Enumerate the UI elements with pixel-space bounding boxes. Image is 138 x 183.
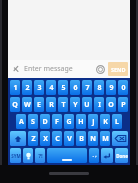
button[interactable]: Shift <box>10 131 26 146</box>
staticText: 8 <box>97 83 102 93</box>
button[interactable]: 3 <box>34 80 44 95</box>
button[interactable]: S <box>28 114 38 129</box>
staticText: 5 <box>61 83 66 93</box>
staticText: C <box>55 134 60 144</box>
staticText: X <box>43 134 48 144</box>
button[interactable]: U <box>82 97 92 112</box>
staticText: B <box>79 134 84 144</box>
staticText: A <box>19 117 24 127</box>
staticText: L <box>115 117 119 127</box>
staticText: G <box>66 117 72 127</box>
button[interactable]: 6 <box>70 80 80 95</box>
button[interactable]: Attach <box>8 61 24 77</box>
staticText: I <box>98 100 101 110</box>
button[interactable]: J <box>88 114 98 129</box>
button[interactable]: 1 <box>10 80 20 95</box>
button[interactable]: SEND <box>108 62 128 76</box>
button[interactable]: D <box>40 114 50 129</box>
staticText: 0 <box>121 83 126 93</box>
staticText: 7 <box>85 83 90 93</box>
button[interactable]: Y <box>70 97 80 112</box>
button[interactable]: C <box>52 131 62 146</box>
button[interactable]: I <box>94 97 104 112</box>
staticText: M <box>102 134 109 144</box>
staticText: 2 <box>25 83 30 93</box>
other: Backspace <box>112 131 128 146</box>
staticText: T <box>61 100 66 110</box>
staticText: O <box>108 100 114 110</box>
staticText: 6 <box>73 83 78 93</box>
staticText: D <box>42 117 48 127</box>
button[interactable]: ?! <box>35 148 45 163</box>
button[interactable]: P <box>118 97 128 112</box>
button[interactable]: Backspace <box>112 131 128 146</box>
button[interactable]: 0 <box>118 80 128 95</box>
button[interactable]: 5 <box>58 80 68 95</box>
button[interactable]: T <box>58 97 68 112</box>
staticText: SEND <box>111 66 126 73</box>
staticText: S <box>31 117 35 127</box>
button[interactable]: Space <box>47 148 87 163</box>
button[interactable]: Settings <box>23 148 33 163</box>
staticText: Done <box>116 153 128 159</box>
button[interactable]: W <box>22 97 32 112</box>
staticText: Z <box>31 134 36 144</box>
button[interactable]: M <box>100 131 110 146</box>
button[interactable]: H <box>76 114 86 129</box>
staticText: 9 <box>109 83 114 93</box>
staticText: Q <box>12 100 18 110</box>
button[interactable]: Enter message <box>24 64 92 74</box>
button[interactable]: V <box>64 131 74 146</box>
staticText: Y <box>73 100 78 110</box>
button[interactable]: F <box>52 114 62 129</box>
button[interactable]: K <box>100 114 110 129</box>
button[interactable]: R <box>46 97 56 112</box>
staticText: 4 <box>49 83 54 93</box>
other: Space <box>47 148 87 163</box>
button[interactable]: 7 <box>82 80 92 95</box>
button[interactable]: O <box>106 97 116 112</box>
button[interactable]: Emoji <box>92 61 108 77</box>
other: Enter <box>101 148 113 163</box>
button[interactable]: N <box>88 131 98 146</box>
staticText: K <box>103 117 108 127</box>
staticText: E <box>37 100 41 110</box>
button[interactable]: E <box>34 97 44 112</box>
staticText: H <box>78 117 84 127</box>
button[interactable]: L <box>112 114 122 129</box>
staticText: J <box>92 117 95 127</box>
button[interactable]: X <box>40 131 50 146</box>
staticText: R <box>49 100 54 110</box>
button[interactable]: Z <box>28 131 38 146</box>
staticText: 1 <box>13 83 18 93</box>
staticText: U <box>84 100 90 110</box>
button[interactable]: Enter <box>101 148 113 163</box>
staticText: W <box>24 100 31 110</box>
staticText: P <box>121 100 126 110</box>
button[interactable]: 8 <box>94 80 104 95</box>
staticText: F <box>55 117 59 127</box>
staticText: ?! <box>38 152 43 160</box>
button[interactable]: Done <box>115 148 128 163</box>
staticText: 3 <box>37 83 42 93</box>
staticText: N <box>90 134 96 144</box>
button[interactable]: B <box>76 131 86 146</box>
button[interactable]: . , <box>89 148 99 163</box>
staticText: V <box>67 134 72 144</box>
button[interactable]: A <box>16 114 26 129</box>
staticText: . , <box>92 152 97 159</box>
other: Shift <box>10 131 26 146</box>
button[interactable]: 9 <box>106 80 116 95</box>
other: Settings <box>23 148 33 163</box>
staticText: SYM <box>11 153 21 159</box>
button[interactable]: Q <box>10 97 20 112</box>
button[interactable]: SYM <box>10 148 21 163</box>
button[interactable]: G <box>64 114 74 129</box>
button[interactable]: 2 <box>22 80 32 95</box>
button[interactable]: 4 <box>46 80 56 95</box>
